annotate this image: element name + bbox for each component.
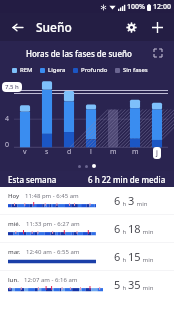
staticText: mar. (8, 248, 21, 256)
staticText: Horas de las fases de sueño (26, 48, 132, 59)
staticText: Ligera (48, 66, 66, 74)
button[interactable]: mié. (0, 215, 174, 242)
staticText: Profundo (81, 66, 108, 74)
staticText: min (135, 200, 148, 208)
button[interactable]: Ajustes (120, 16, 142, 38)
staticText: 3 (128, 193, 135, 208)
staticText: 6 (114, 221, 121, 236)
staticText: h (121, 200, 128, 208)
staticText: 6 (114, 249, 121, 264)
staticText: 12:00 (153, 2, 171, 12)
staticText: Esta semana (8, 174, 57, 185)
staticText: m (110, 147, 117, 157)
staticText: l (90, 147, 92, 157)
staticText: h (121, 228, 128, 236)
staticText: 6 h 22 min de media (88, 174, 166, 185)
staticText: Sin fases (123, 66, 148, 74)
button[interactable]: Hoy (0, 187, 174, 214)
staticText: 11:33 pm - 6:27 am (26, 220, 80, 228)
staticText: 100% (127, 2, 145, 12)
staticText: s (45, 147, 49, 157)
button[interactable]: lun. (0, 271, 174, 298)
staticText: 11:48 pm - 6:45 am (25, 192, 79, 200)
staticText: h (121, 256, 128, 264)
staticText: m (132, 147, 139, 157)
button[interactable]: mar. (0, 243, 174, 270)
staticText: mié. (8, 220, 21, 228)
staticText: 12:40 am - 6:55 am (26, 248, 80, 256)
staticText: 18 (128, 221, 141, 236)
staticText: d (67, 147, 72, 157)
staticText: 4 (5, 114, 10, 124)
button[interactable]: Añadir (146, 16, 168, 38)
staticText: Sueño (36, 19, 72, 35)
staticText: Hoy (8, 192, 20, 200)
button[interactable]: Atrás (6, 16, 28, 38)
staticText: h (121, 284, 128, 292)
staticText: REM (20, 66, 33, 74)
staticText: min (141, 256, 154, 264)
staticText: 0 (5, 140, 10, 150)
staticText: v (23, 147, 27, 157)
staticText: 15 (128, 249, 141, 264)
button[interactable]: Pantalla completa (150, 45, 166, 61)
staticText: 35 (128, 277, 141, 292)
staticText: 5 (114, 277, 121, 292)
staticText: min (141, 228, 154, 236)
staticText: min (141, 284, 154, 292)
staticText: 12:07 am - 6:16 am (24, 276, 78, 284)
staticText: 6 (114, 193, 121, 208)
staticText: j (156, 148, 158, 158)
staticText: 7,5 h (5, 83, 19, 91)
staticText: lun. (8, 276, 19, 284)
